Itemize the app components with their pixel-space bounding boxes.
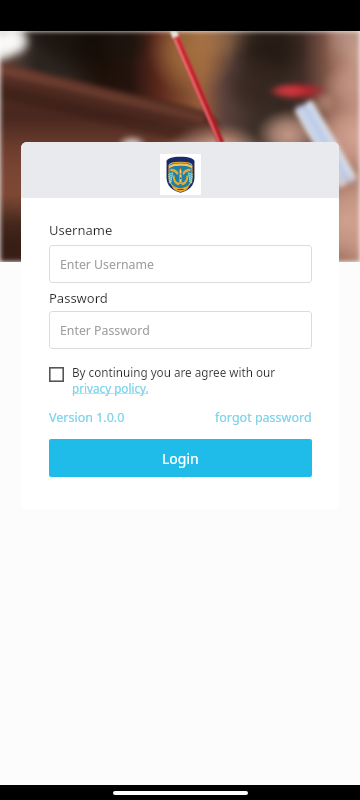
staticText: Username [49, 221, 113, 239]
button[interactable]: forgot password [215, 409, 312, 426]
staticText: Password [49, 289, 108, 307]
staticText: Login [162, 449, 199, 468]
staticText: Enter Password [60, 322, 150, 339]
button[interactable]: Version 1.0.0 [49, 409, 125, 426]
staticText: Enter Username [60, 256, 154, 273]
button[interactable]: Enter Password [49, 311, 312, 349]
staticText: By continuing you are agree with our [72, 364, 276, 380]
button[interactable]: Agree to privacy policy [49, 367, 64, 382]
button[interactable]: Enter Username [49, 245, 312, 283]
button[interactable]: privacy policy. [72, 380, 149, 396]
button[interactable]: Login [49, 439, 312, 477]
